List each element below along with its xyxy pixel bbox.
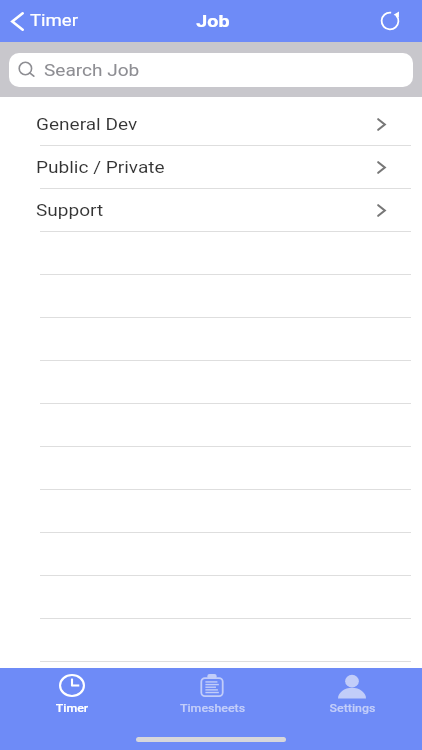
staticText: Settings [329,702,376,714]
staticText: General Dev [36,115,138,134]
staticText: Public / Private [36,158,166,177]
button[interactable]: Timesheets [142,668,282,714]
button[interactable]: Search Job [9,53,413,87]
button[interactable]: Timer [0,0,81,42]
button[interactable]: Refresh [367,0,422,42]
staticText: Support [36,201,104,220]
button[interactable]: Timer [2,668,142,714]
button[interactable]: Public / Private [0,146,422,189]
button[interactable]: General Dev [0,103,422,146]
staticText: Timer [55,702,89,714]
button[interactable]: Settings [282,668,422,714]
staticText: Timer [30,12,79,30]
staticText: Timesheets [180,702,245,714]
button[interactable]: Support [0,189,422,232]
staticText: Job [196,12,230,31]
staticText: Search Job [44,61,140,80]
